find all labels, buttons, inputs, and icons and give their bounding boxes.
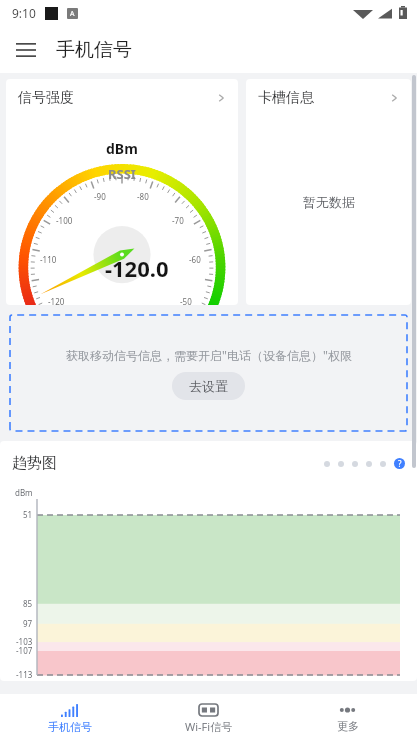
button[interactable]: 更多	[278, 694, 417, 743]
staticText: RSSI	[108, 165, 136, 183]
staticText: -60	[189, 254, 201, 265]
staticText: 手机信号	[56, 38, 132, 62]
staticText: 9:10	[12, 5, 36, 21]
button[interactable]: Help	[394, 458, 405, 469]
staticText: -113	[16, 669, 33, 680]
staticText: 更多	[337, 719, 359, 733]
button[interactable]: 信号强度	[6, 79, 238, 117]
staticText: 85	[23, 598, 33, 609]
staticText: 卡槽信息	[258, 89, 314, 107]
staticText: 手机信号	[48, 720, 92, 734]
staticText: -110	[40, 254, 57, 265]
button[interactable]: 卡槽信息	[246, 79, 411, 117]
staticText: 去设置	[189, 378, 228, 394]
button[interactable]: Wi-Fi信号	[139, 694, 278, 743]
staticText: ?	[398, 458, 402, 469]
staticText: 51	[23, 509, 33, 520]
staticText: dBm	[15, 487, 33, 498]
staticText: -50	[180, 296, 192, 305]
staticText: -80	[137, 191, 149, 202]
staticText: 获取移动信号信息，需要开启"电话（设备信息）"权限	[66, 347, 352, 363]
staticText: -107	[16, 645, 33, 656]
staticText: -90	[94, 191, 106, 202]
button[interactable]: Menu	[8, 32, 44, 68]
staticText: 暂无数据	[303, 194, 355, 210]
button[interactable]: 手机信号	[0, 694, 139, 743]
staticText: Wi-Fi信号	[185, 719, 233, 734]
staticText: 97	[23, 618, 33, 629]
staticText: -120	[48, 296, 65, 305]
staticText: -70	[172, 215, 184, 226]
staticText: -100	[56, 215, 73, 226]
button[interactable]: 去设置	[172, 372, 245, 400]
staticText: A	[70, 9, 75, 19]
staticText: -103	[16, 636, 33, 647]
staticText: 信号强度	[18, 89, 74, 107]
staticText: 趋势图	[12, 454, 57, 473]
staticText: dBm	[106, 139, 138, 158]
staticText: -120.0	[105, 253, 169, 283]
